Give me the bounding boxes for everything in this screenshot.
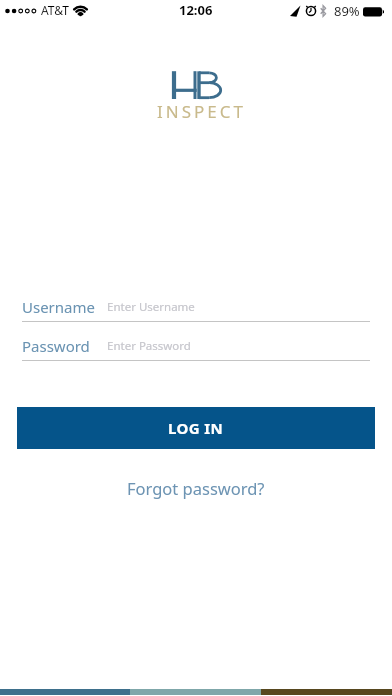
staticText: 12:06 (179, 1, 213, 19)
button[interactable]: Password (17, 334, 375, 361)
staticText: INSPECT (157, 100, 246, 123)
staticText: Username (22, 297, 95, 317)
staticText: Enter Username (107, 299, 195, 315)
staticText: 89% (334, 2, 360, 20)
button[interactable]: Username (17, 296, 375, 322)
button[interactable]: LOG IN (17, 407, 375, 449)
staticText: Enter Password (107, 338, 191, 354)
button[interactable]: Forgot password? (127, 477, 265, 499)
staticText: LOG IN (168, 418, 224, 438)
staticText: AT&T (41, 2, 69, 18)
staticText: Password (22, 336, 90, 356)
